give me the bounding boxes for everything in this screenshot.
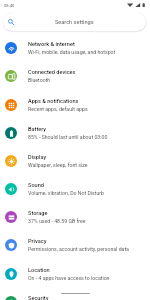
staticText: On - 4 apps have access to location <box>28 275 110 281</box>
staticText: Volume, vibration, Do Not Disturb <box>28 190 104 196</box>
staticText: Battery <box>28 126 47 133</box>
staticText: 85% - Should last until about 03:00 <box>28 134 108 140</box>
button[interactable]: Privacy <box>0 231 150 259</box>
staticText: Network & internet <box>28 41 75 48</box>
staticText: Recent apps, default apps <box>28 106 88 112</box>
staticText: Storage <box>28 210 48 217</box>
staticText: Permissions, account activity, personal … <box>28 246 129 252</box>
staticText: Security <box>28 295 49 300</box>
button[interactable]: Network & internet <box>0 34 150 62</box>
other: Status icons <box>127 3 145 7</box>
staticText: Search settings <box>55 19 94 26</box>
staticText: 08:40 <box>4 3 15 8</box>
button[interactable]: Display <box>0 147 150 175</box>
staticText: Wi-Fi, mobile, data usage, and hotspot <box>28 49 116 55</box>
button[interactable]: Location <box>0 260 150 288</box>
button[interactable]: Sound <box>0 175 150 203</box>
staticText: Connected devices <box>28 69 76 76</box>
staticText: Display <box>28 154 47 161</box>
button[interactable]: Search settings <box>3 13 146 31</box>
staticText: Bluetooth <box>28 77 51 83</box>
staticText: Apps & notifications <box>28 98 79 105</box>
staticText: 37% used - 48.59 GB free <box>28 218 86 224</box>
staticText: Privacy <box>28 238 47 245</box>
button[interactable]: Battery <box>0 119 150 147</box>
button[interactable]: Connected devices <box>0 62 150 90</box>
staticText: Sound <box>28 182 44 189</box>
button[interactable]: Apps & notifications <box>0 91 150 119</box>
button[interactable]: Security <box>0 288 150 300</box>
staticText: Wallpaper, sleep, font size <box>28 162 88 168</box>
staticText: Location <box>28 267 50 274</box>
button[interactable]: Storage <box>0 203 150 231</box>
other: Search <box>8 19 14 25</box>
